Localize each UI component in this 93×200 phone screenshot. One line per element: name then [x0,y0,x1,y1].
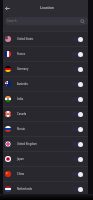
button[interactable]: Canada [0,106,93,121]
button[interactable]: Japan [0,151,93,166]
staticText: Japan [17,157,24,161]
button[interactable]: Toggle [72,126,83,132]
staticText: United Kingdom [17,142,37,146]
staticText: Germany [17,67,29,71]
button[interactable]: Australia [0,76,93,91]
button[interactable]: India [0,91,93,106]
button[interactable]: Toggle [72,66,83,72]
staticText: Location [40,5,54,10]
button[interactable]: France [0,46,93,61]
staticText: Canada [17,112,27,116]
button[interactable]: United Kingdom [0,136,93,151]
staticText: China [17,172,24,176]
staticText: Netherlands [17,187,33,191]
staticText: Australia [17,82,28,86]
staticText: Russia [17,127,25,131]
button[interactable]: Germany [0,61,93,76]
button[interactable]: Toggle [72,36,83,42]
button[interactable]: Toggle [72,96,83,102]
staticText: Search [7,19,17,23]
button[interactable]: Toggle [72,51,83,57]
button[interactable]: Toggle [72,156,83,162]
button[interactable]: Toggle [72,186,83,192]
button[interactable]: Search [5,17,88,25]
button[interactable]: Toggle [72,111,83,117]
staticText: France [17,52,26,56]
button[interactable]: Toggle [72,81,83,87]
button[interactable]: Toggle [72,171,83,177]
button[interactable]: Netherlands [0,181,93,196]
button[interactable]: Russia [0,121,93,136]
button[interactable]: Toggle [72,141,83,147]
button[interactable]: Back [2,3,13,14]
staticText: United States [17,37,34,41]
staticText: India [17,97,24,101]
button[interactable]: United States [0,31,93,46]
button[interactable]: China [0,166,93,181]
